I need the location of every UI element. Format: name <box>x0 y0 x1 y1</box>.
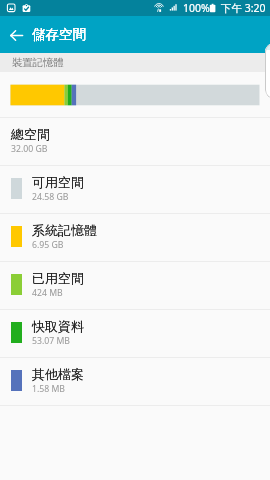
staticText: 53.07 MB <box>32 335 70 347</box>
staticText: 裝置記憶體 <box>12 56 64 69</box>
staticText: 總空間 <box>11 126 50 142</box>
staticText: 6.95 GB <box>32 239 64 251</box>
staticText: 總空間 <box>11 126 50 142</box>
staticText: 可用空間 <box>32 174 84 190</box>
staticText: 1.58 MB <box>32 383 66 395</box>
staticText: 快取資料 <box>32 318 84 334</box>
staticText: 下午 3:20 <box>221 1 266 15</box>
staticText: 24.58 GB <box>32 191 69 203</box>
staticText: 系統記憶體 <box>32 222 97 238</box>
button[interactable]: 總空間 <box>0 117 270 165</box>
staticText: 系統記憶體 <box>32 222 97 238</box>
staticText: 其他檔案 <box>32 366 84 382</box>
staticText: 已用空間 <box>32 270 84 286</box>
staticText: 32.00 GB <box>11 143 48 155</box>
staticText: 儲存空間 <box>32 26 86 43</box>
button[interactable]: 已用空間 <box>0 261 270 309</box>
staticText: 424 MB <box>32 287 63 299</box>
staticText: 已用空間 <box>32 270 84 286</box>
button[interactable]: 快取資料 <box>0 309 270 357</box>
button[interactable]: 可用空間 <box>0 165 270 213</box>
staticText: 可用空間 <box>32 174 84 190</box>
staticText: 儲存空間 <box>32 26 86 43</box>
button[interactable]: 系統記憶體 <box>0 213 270 261</box>
staticText: 100% <box>183 1 210 15</box>
button[interactable]: Back <box>0 19 32 51</box>
staticText: 其他檔案 <box>32 366 84 382</box>
staticText: 快取資料 <box>32 318 84 334</box>
button[interactable]: 其他檔案 <box>0 357 270 405</box>
